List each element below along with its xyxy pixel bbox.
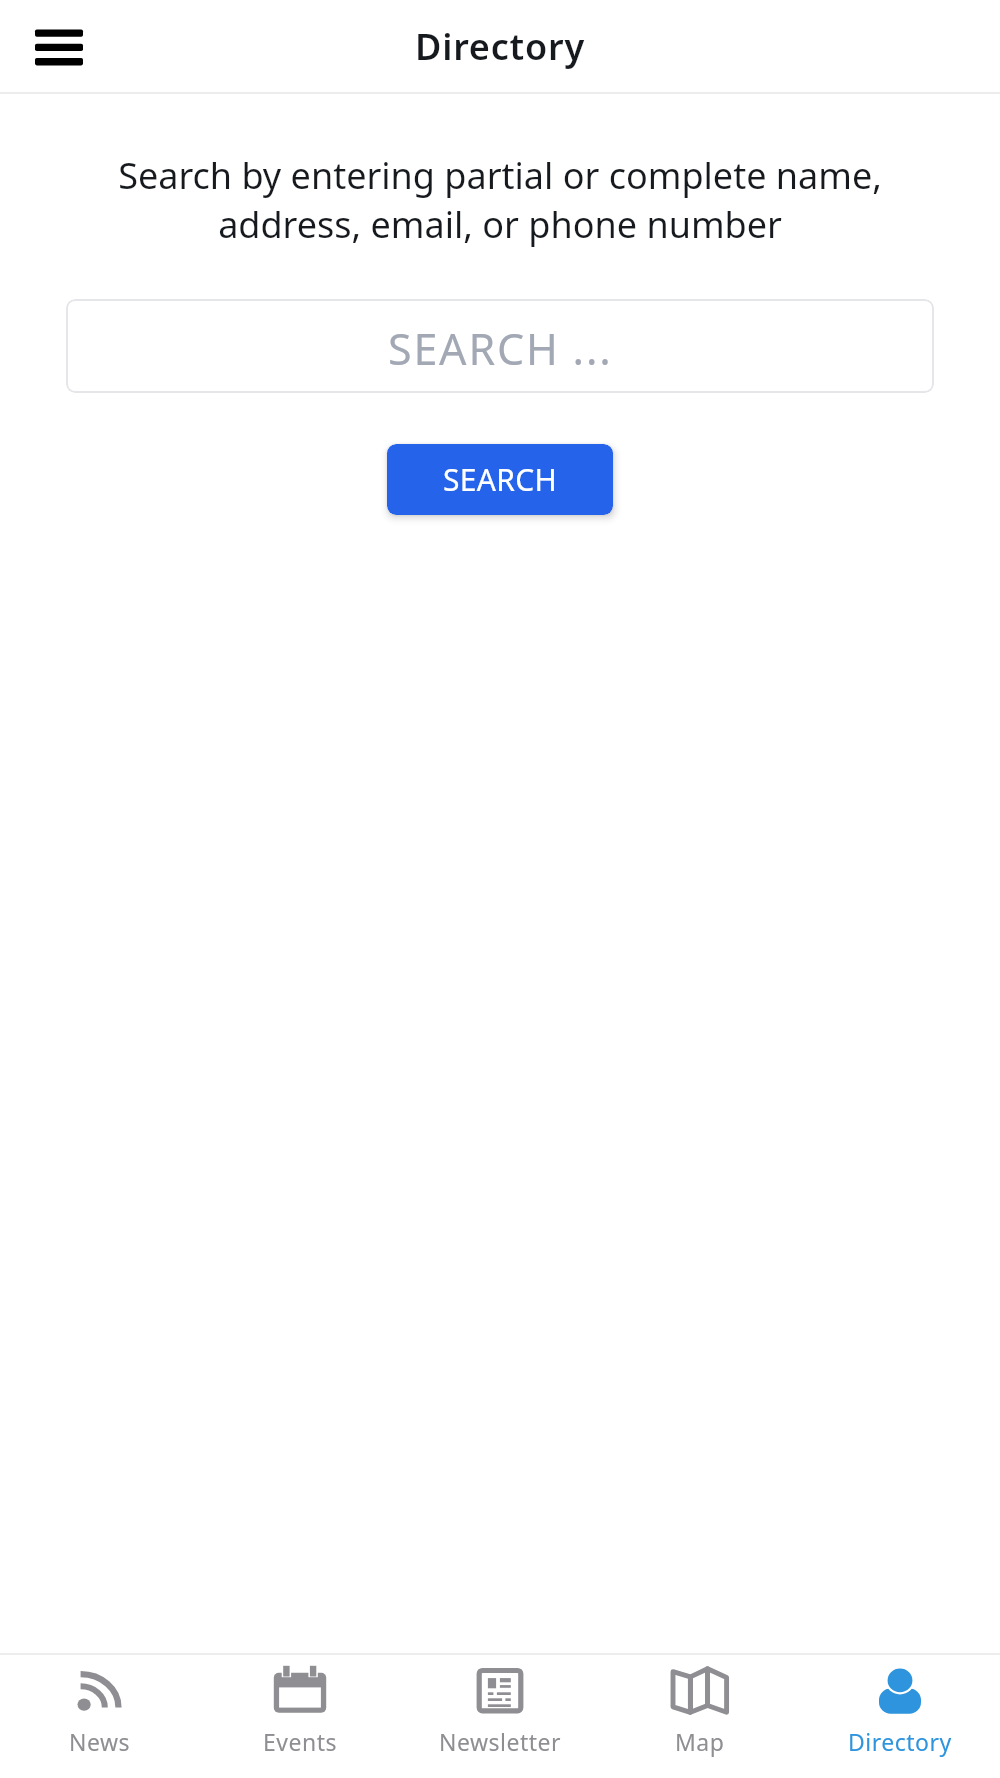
staticText: SEARCH ... [388,319,613,378]
button[interactable]: Map [600,1655,800,1757]
button[interactable]: Events [200,1655,400,1757]
button[interactable]: News [0,1655,200,1757]
staticText: Search by entering partial or complete n… [58,151,942,248]
button[interactable]: SEARCH [387,444,613,515]
button[interactable]: Newsletter [400,1655,600,1757]
staticText: News [69,1726,131,1757]
staticText: Directory [848,1726,952,1757]
staticText: Map [675,1726,725,1757]
staticText: Newsletter [439,1726,562,1757]
button[interactable]: SEARCH ... [66,299,934,393]
staticText: Events [263,1726,337,1757]
staticText: Directory [415,22,585,71]
button[interactable]: Directory [800,1655,1000,1757]
staticText: SEARCH [443,459,557,500]
button[interactable]: Open navigation menu [14,0,104,92]
